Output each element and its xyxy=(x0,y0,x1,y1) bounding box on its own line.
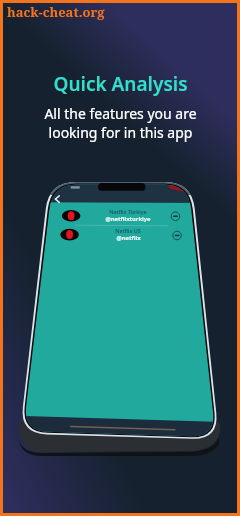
staticText: All the features you are looking for in … xyxy=(44,104,197,142)
staticText: @netflix xyxy=(116,234,141,242)
staticText: @netflixturkiye xyxy=(105,215,151,223)
staticText: Netflix US xyxy=(115,227,141,234)
staticText: hack-cheat.org xyxy=(7,3,105,21)
staticText: Quick Analysis xyxy=(53,71,188,97)
staticText: Netflix Türkiye xyxy=(109,208,147,215)
